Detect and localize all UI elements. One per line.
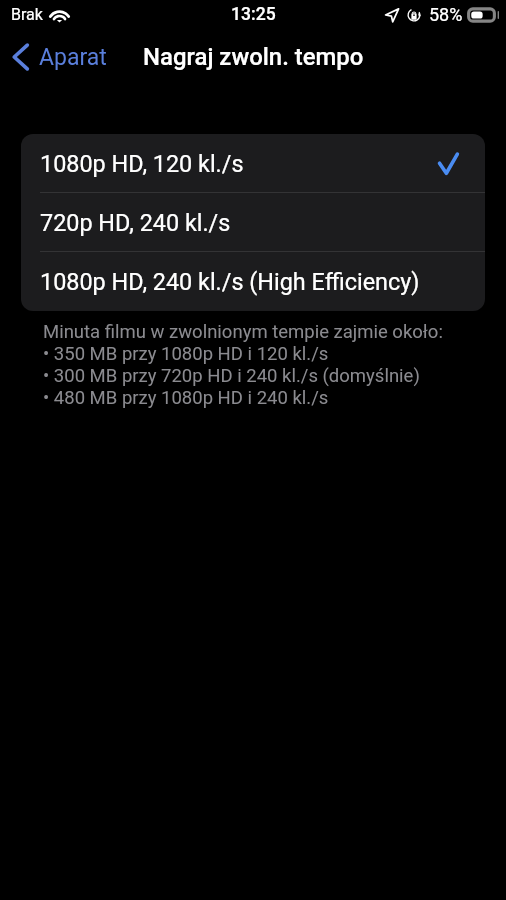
button[interactable]: 1080p HD, 120 kl./s [21,134,485,193]
other: Wstecz [12,43,29,71]
button[interactable]: Wstecz [0,38,117,76]
staticText: Brak [11,5,43,24]
staticText: 1080p HD, 240 kl./s (High Efficiency) [40,268,420,295]
staticText: 1080p HD, 120 kl./s [40,150,244,177]
staticText: Nagraj zwoln. tempo [143,43,364,71]
staticText: 58% [429,4,463,25]
staticText: Aparat [39,44,107,71]
button[interactable]: 720p HD, 240 kl./s [21,193,485,252]
staticText: Minuta filmu w zwolnionym tempie zajmie … [43,321,443,409]
staticText: 720p HD, 240 kl./s [40,209,231,236]
staticText: 13:25 [231,4,276,25]
button[interactable]: 1080p HD, 240 kl./s (High Efficiency) [21,252,485,311]
